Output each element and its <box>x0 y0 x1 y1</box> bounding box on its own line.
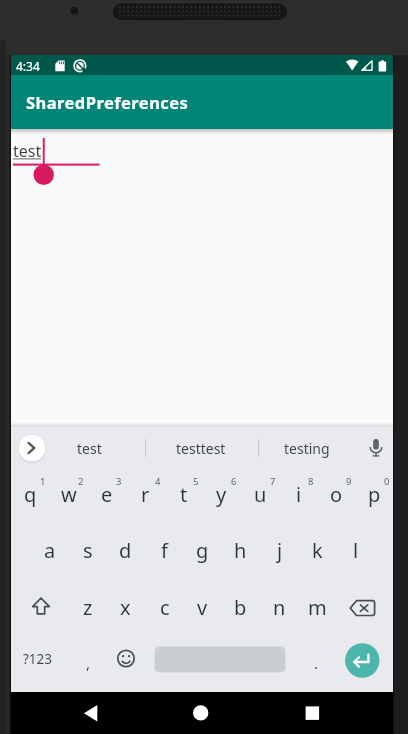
staticText: 7 <box>270 475 276 487</box>
staticText: testing <box>284 439 330 458</box>
button[interactable]: test <box>49 434 129 462</box>
button[interactable]: o <box>318 476 355 512</box>
staticText: e <box>101 481 113 508</box>
staticText: k <box>312 537 323 564</box>
button[interactable]: w <box>50 476 87 512</box>
button[interactable]: e <box>88 476 125 512</box>
staticText: j <box>277 537 283 564</box>
button[interactable] <box>345 643 380 678</box>
button[interactable]: t <box>165 476 202 512</box>
button[interactable]: j <box>261 532 298 568</box>
button[interactable] <box>18 434 46 462</box>
button[interactable]: . <box>297 648 335 678</box>
staticText: c <box>160 594 170 621</box>
staticText: h <box>234 537 247 564</box>
staticText: SharedPreferences <box>26 91 189 113</box>
staticText: 2 <box>78 475 84 487</box>
staticText: 5 <box>193 475 199 487</box>
button[interactable]: f <box>146 532 183 568</box>
button[interactable]: h <box>222 532 259 568</box>
button[interactable]: v <box>184 589 221 625</box>
staticText: l <box>353 537 359 564</box>
staticText: d <box>119 537 132 564</box>
staticText: n <box>273 594 286 621</box>
button[interactable] <box>13 132 369 168</box>
button[interactable]: k <box>299 532 336 568</box>
button[interactable]: l <box>337 532 374 568</box>
staticText: 6 <box>231 475 237 487</box>
staticText: test <box>13 140 42 162</box>
button[interactable] <box>344 591 382 622</box>
staticText: o <box>330 481 343 508</box>
button[interactable]: a <box>31 532 68 568</box>
staticText: , <box>86 653 91 673</box>
button[interactable] <box>298 699 326 727</box>
button[interactable]: n <box>261 589 298 625</box>
staticText: 0 <box>384 475 390 487</box>
staticText: s <box>83 537 93 564</box>
staticText: 4:34 <box>16 58 40 74</box>
staticText: 8 <box>308 475 314 487</box>
staticText: 1 <box>40 475 46 487</box>
button[interactable]: q <box>12 476 49 512</box>
staticText: 4 <box>155 475 161 487</box>
button[interactable]: , <box>69 648 107 678</box>
staticText: u <box>254 481 267 508</box>
button[interactable] <box>22 591 60 622</box>
staticText: f <box>161 537 168 564</box>
button[interactable] <box>76 697 106 727</box>
button[interactable]: i <box>280 476 317 512</box>
staticText: . <box>314 653 319 673</box>
button[interactable] <box>107 643 145 674</box>
button[interactable]: z <box>69 589 106 625</box>
button[interactable]: y <box>203 476 240 512</box>
staticText: r <box>141 481 150 508</box>
staticText: g <box>196 537 209 564</box>
button[interactable]: g <box>184 532 221 568</box>
button[interactable]: testtest <box>156 434 246 462</box>
staticText: ?123 <box>23 650 53 668</box>
staticText: b <box>234 594 247 621</box>
button[interactable]: p <box>356 476 393 512</box>
button[interactable]: s <box>69 532 106 568</box>
staticText: q <box>24 481 37 508</box>
staticText: a <box>44 537 56 564</box>
staticText: 9 <box>346 475 352 487</box>
staticText: test <box>77 439 102 458</box>
button[interactable]: r <box>127 476 164 512</box>
button[interactable]: b <box>222 589 259 625</box>
staticText: m <box>308 594 327 621</box>
staticText: testtest <box>176 439 226 458</box>
staticText: v <box>197 594 208 621</box>
staticText: x <box>120 594 131 621</box>
staticText: p <box>368 481 381 508</box>
button[interactable]: c <box>146 589 183 625</box>
button[interactable]: ?123 <box>12 646 64 672</box>
button[interactable] <box>186 698 216 728</box>
staticText: y <box>216 481 227 508</box>
staticText: 3 <box>116 475 122 487</box>
staticText: i <box>296 481 302 508</box>
button[interactable] <box>154 646 285 672</box>
button[interactable]: x <box>107 589 144 625</box>
staticText: z <box>83 594 93 621</box>
button[interactable]: m <box>299 589 336 625</box>
button[interactable]: testing <box>267 434 347 462</box>
button[interactable]: d <box>107 532 144 568</box>
button[interactable]: u <box>242 476 279 512</box>
button[interactable] <box>11 75 393 129</box>
button[interactable] <box>362 434 390 462</box>
staticText: t <box>180 481 188 508</box>
staticText: w <box>61 481 77 508</box>
